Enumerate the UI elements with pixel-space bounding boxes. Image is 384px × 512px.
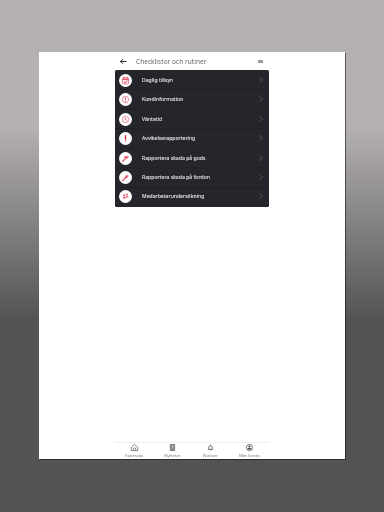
button[interactable]: Startsida xyxy=(115,442,153,459)
button[interactable]: Rapportera skada på gods xyxy=(115,148,269,168)
button[interactable]: Daglig tillsyn xyxy=(115,70,269,90)
staticText: Daglig tillsyn xyxy=(142,77,174,84)
button[interactable]: Avvikelserapportering xyxy=(115,128,269,148)
button[interactable]: Kundinformation xyxy=(115,89,269,109)
staticText: Mitt konto xyxy=(239,452,260,458)
button[interactable]: Väntetid xyxy=(115,109,269,129)
button[interactable]: Back xyxy=(116,54,130,68)
staticText: Väntetid xyxy=(142,116,163,123)
button[interactable]: Rapportera skada på fordon xyxy=(115,167,269,187)
staticText: Notiser xyxy=(203,452,218,458)
button[interactable]: Menu xyxy=(254,55,266,67)
button[interactable]: Nyheter xyxy=(153,442,191,459)
button[interactable]: Mitt konto xyxy=(230,442,269,459)
staticText: Avvikelserapportering xyxy=(142,135,196,142)
staticText: Medarbetarundersökning xyxy=(142,193,205,200)
staticText: Rapportera skada på gods xyxy=(142,155,206,162)
staticText: Kundinformation xyxy=(142,96,184,103)
staticText: Nyheter xyxy=(164,452,181,458)
staticText: Checklistor och rutiner xyxy=(136,57,207,66)
staticText: Rapportera skada på fordon xyxy=(142,174,210,181)
button[interactable]: Medarbetarundersökning xyxy=(115,186,269,206)
button[interactable]: Notiser xyxy=(191,442,230,459)
staticText: Startsida xyxy=(125,452,143,458)
